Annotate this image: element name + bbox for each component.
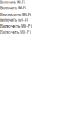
staticText: Включить Wi-Fi	[0, 0, 25, 4]
staticText: Включить Wi-Fi	[0, 18, 28, 23]
staticText: Включить Wi-Fi	[0, 11, 31, 17]
staticText: Включить Wi-Fi	[0, 30, 31, 35]
staticText: Включить Wi-Fi	[0, 5, 26, 10]
staticText: Включить Wi-Fi	[0, 24, 32, 29]
